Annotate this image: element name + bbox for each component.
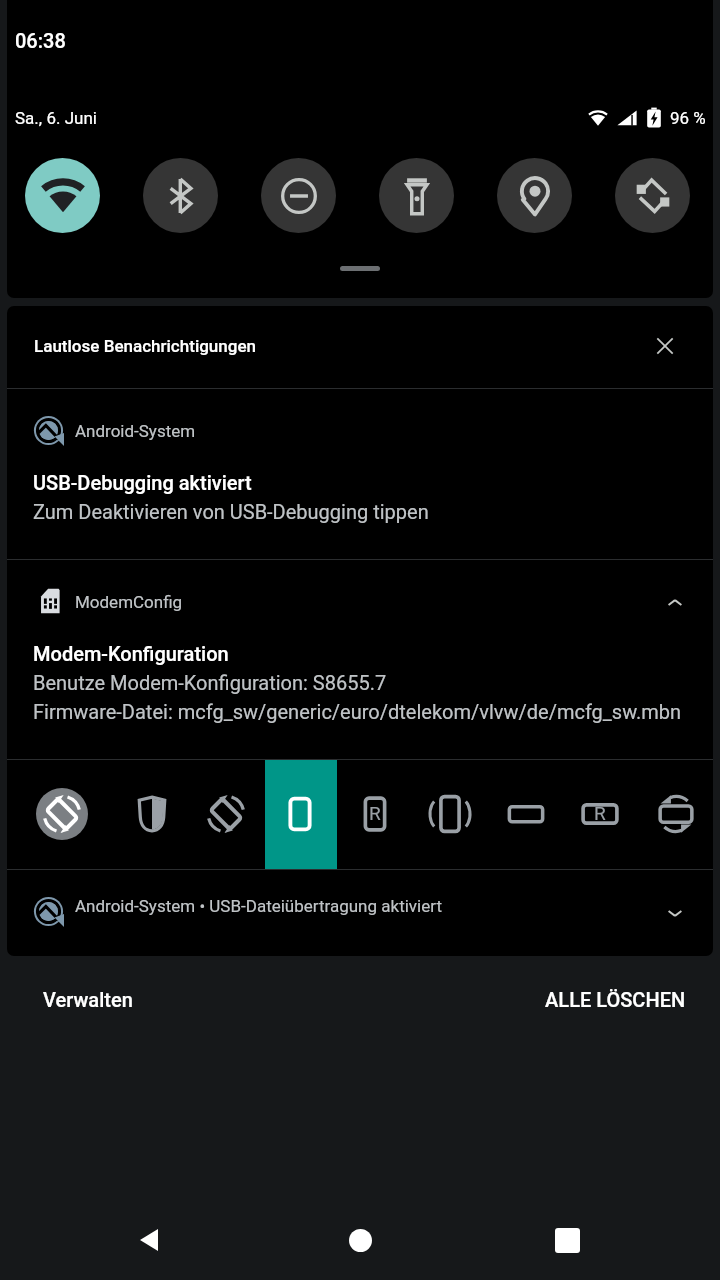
- staticText: Firmware-Datei: mcfg_sw/generic/euro/dte…: [33, 700, 682, 723]
- button[interactable]: ALLE LÖSCHEN: [545, 988, 686, 1011]
- staticText: Benutze Modem-Konfiguration: S8655.7: [33, 671, 387, 694]
- button[interactable]: WLAN: [25, 158, 100, 233]
- button[interactable]: Vibration: [423, 787, 477, 841]
- button[interactable]: Taschenlampe: [379, 158, 454, 233]
- button[interactable]: Schliessen: [649, 330, 681, 362]
- button[interactable]: Bitte nicht stoeren: [261, 158, 336, 233]
- button[interactable]: Bluetooth: [143, 158, 218, 233]
- button[interactable]: Übersicht: [537, 1210, 597, 1270]
- staticText: Verwalten: [43, 988, 133, 1011]
- staticText: Android-System • USB-Dateiübertragung ak…: [75, 896, 442, 916]
- staticText: R: [369, 802, 381, 824]
- button[interactable]: Sicherheit: [125, 787, 179, 841]
- button[interactable]: Hochformat: [273, 787, 327, 841]
- staticText: 06:38: [15, 29, 66, 52]
- button[interactable]: Querformat drehen: [649, 787, 703, 841]
- button[interactable]: Standort: [497, 158, 572, 233]
- button[interactable]: Zurück: [119, 1210, 179, 1270]
- staticText: R: [594, 802, 606, 824]
- button[interactable]: Automatisches Drehen gesperrt: [35, 787, 89, 841]
- staticText: Android-System: [75, 421, 196, 441]
- button[interactable]: Automatisch drehen: [615, 158, 690, 233]
- button[interactable]: Hochformat: [265, 760, 337, 869]
- button[interactable]: Verwalten: [43, 988, 133, 1011]
- button[interactable]: ModemConfig: [7, 560, 713, 759]
- button[interactable]: Android-System: [7, 389, 713, 559]
- button[interactable]: Einklappen: [659, 587, 691, 619]
- staticText: ModemConfig: [75, 592, 183, 612]
- staticText: 96 %: [670, 108, 706, 128]
- button[interactable]: Bildschirm drehen: [199, 787, 253, 841]
- button[interactable]: Ausklappen: [659, 897, 691, 929]
- staticText: Lautlose Benachrichtigungen: [34, 336, 256, 356]
- staticText: Sa., 6. Juni: [15, 108, 97, 128]
- staticText: USB-Debugging aktiviert: [33, 471, 252, 494]
- button[interactable]: Roaming: [348, 787, 402, 841]
- button[interactable]: Roaming Querformat: [573, 787, 627, 841]
- staticText: Modem-Konfiguration: [33, 642, 229, 665]
- button[interactable]: Startbildschirm: [330, 1210, 390, 1270]
- button[interactable]: Android-System • USB-Dateiübertragung ak…: [7, 870, 713, 956]
- button[interactable]: Lautlose Benachrichtigungen: [7, 306, 713, 388]
- button[interactable]: Querformat: [499, 787, 553, 841]
- staticText: Zum Deaktivieren von USB-Debugging tippe…: [33, 500, 429, 523]
- staticText: ALLE LÖSCHEN: [545, 988, 686, 1011]
